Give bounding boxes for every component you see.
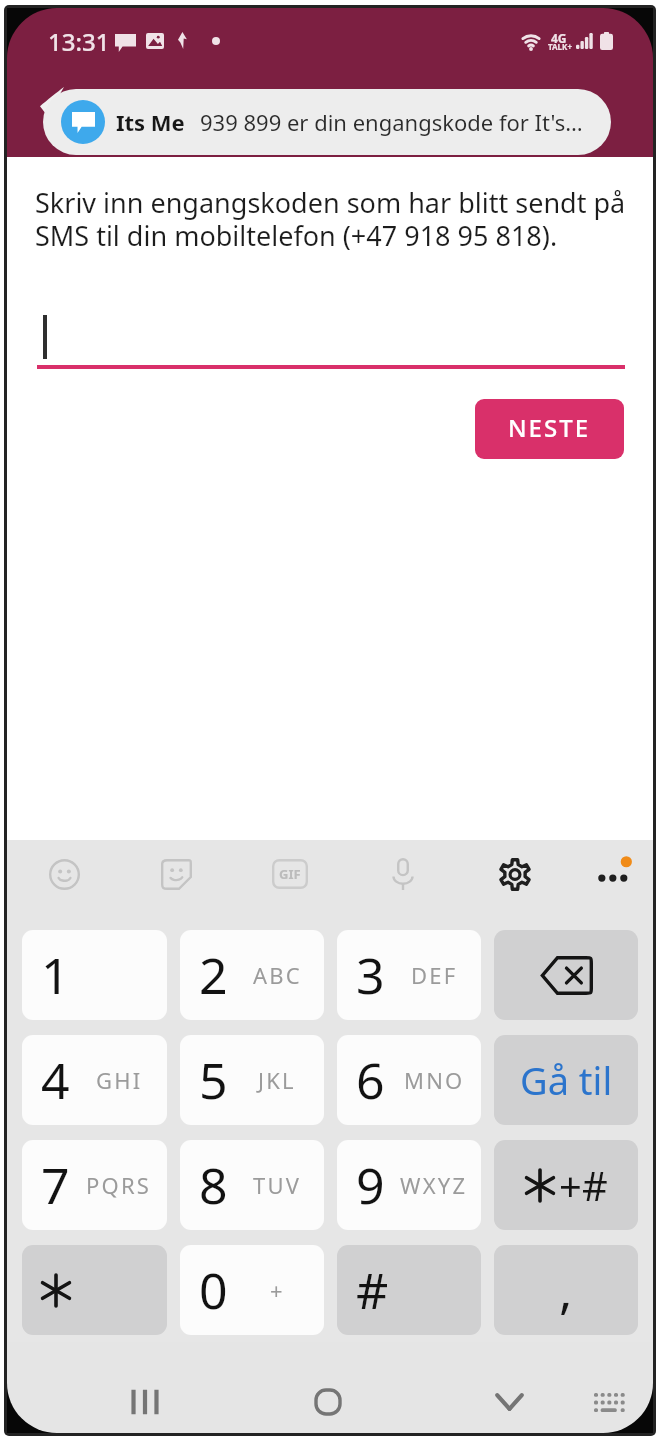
staticText: Gå til — [520, 1054, 613, 1106]
staticText: JKL — [258, 1065, 296, 1095]
staticText: TUV — [253, 1170, 302, 1200]
button[interactable]: 2 — [180, 930, 324, 1020]
staticText: 2 — [199, 941, 228, 1009]
staticText: MNO — [404, 1065, 465, 1095]
button[interactable]: More options — [583, 840, 643, 908]
button[interactable]: Voice input — [373, 840, 433, 908]
other: Backspace — [540, 956, 593, 995]
staticText: PQRS — [86, 1170, 152, 1200]
staticText: + — [270, 1275, 285, 1305]
button[interactable]: 8 — [180, 1140, 324, 1230]
staticText: 1 — [41, 941, 70, 1009]
button[interactable]: 5 — [180, 1035, 324, 1125]
other: Star — [22, 1245, 167, 1335]
button[interactable]: Stickers — [146, 840, 206, 908]
staticText: 0 — [199, 1256, 228, 1324]
button[interactable]: Symbols — [494, 1140, 638, 1230]
staticText: 939 899 er din engangskode for It's… — [200, 107, 583, 137]
button[interactable]: Gå til — [494, 1035, 638, 1125]
staticText: 7 — [41, 1151, 70, 1219]
staticText: GIF — [279, 865, 301, 883]
button[interactable]: Emoji — [34, 840, 94, 908]
staticText: 5 — [199, 1046, 228, 1114]
staticText: 6 — [356, 1046, 385, 1114]
other: Symbols — [494, 1140, 638, 1230]
staticText: WXYZ — [400, 1170, 468, 1200]
staticText: 3 — [356, 941, 385, 1009]
staticText: DEF — [411, 960, 458, 990]
button[interactable]: NESTE — [475, 399, 624, 459]
button[interactable]: 9 — [337, 1140, 481, 1230]
button[interactable]: Backspace — [494, 930, 638, 1020]
button[interactable]: Recent apps — [110, 1371, 180, 1433]
button[interactable]: GIF — [260, 840, 320, 908]
staticText: 9 — [356, 1151, 385, 1219]
button[interactable]: Keyboard settings — [485, 840, 545, 908]
button[interactable]: 7 — [22, 1140, 167, 1230]
staticText: +# — [559, 1158, 608, 1212]
staticText: Its Me — [116, 107, 185, 137]
staticText: TALK+ — [548, 41, 572, 52]
staticText: NESTE — [508, 411, 591, 444]
staticText: , — [559, 1256, 573, 1324]
button[interactable]: 4 — [22, 1035, 167, 1125]
button[interactable]: # — [337, 1245, 481, 1335]
button[interactable]: Its Me — [43, 89, 611, 155]
staticText: GHI — [96, 1065, 143, 1095]
button[interactable]: Change keyboard — [575, 1371, 645, 1433]
staticText: 4G — [551, 30, 567, 46]
staticText: ABC — [253, 960, 302, 990]
staticText: 13:31 — [48, 25, 110, 58]
staticText: SMS til din mobiltelefon (+47 918 95 818… — [35, 217, 558, 254]
button[interactable]: 0 — [180, 1245, 324, 1335]
button[interactable]: , — [494, 1245, 638, 1335]
button[interactable]: 6 — [337, 1035, 481, 1125]
button[interactable]: Hide keyboard — [474, 1371, 544, 1433]
staticText: 8 — [199, 1151, 228, 1219]
staticText: Skriv inn engangskoden som har blitt sen… — [35, 184, 626, 221]
staticText: 4 — [41, 1046, 70, 1114]
button[interactable]: 1 — [22, 930, 167, 1020]
button[interactable]: 3 — [337, 930, 481, 1020]
staticText: # — [356, 1256, 389, 1324]
button[interactable]: Home — [293, 1371, 363, 1433]
button[interactable]: Star — [22, 1245, 167, 1335]
